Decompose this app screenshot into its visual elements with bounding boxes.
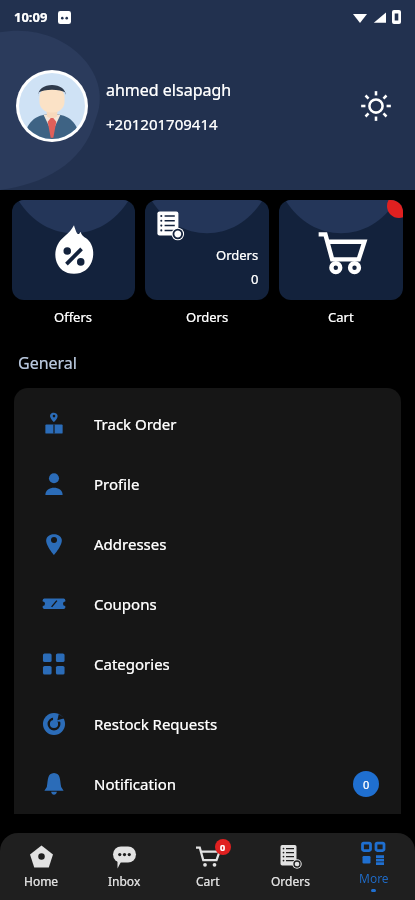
button[interactable]: Categories — [14, 634, 401, 694]
staticText: General — [18, 352, 77, 374]
staticText: ahmed elsapagh — [106, 79, 232, 101]
button[interactable]: More — [332, 835, 415, 898]
staticText: Home — [24, 873, 59, 889]
staticText: More — [359, 870, 389, 886]
staticText: Categories — [94, 654, 170, 674]
staticText: Offers — [54, 308, 93, 326]
staticText: Notification — [94, 774, 177, 794]
button[interactable]: Home — [0, 838, 83, 895]
staticText: Orders — [216, 246, 259, 264]
staticText: Cart — [328, 308, 354, 326]
staticText: 0 — [251, 270, 259, 288]
staticText: Inbox — [108, 873, 141, 889]
button[interactable]: Profile photo — [19, 73, 85, 139]
staticText: Orders — [271, 873, 310, 889]
button[interactable]: 0 — [166, 838, 249, 895]
button[interactable]: Offers — [12, 200, 135, 326]
staticText: Coupons — [94, 594, 157, 614]
button[interactable]: Profile — [14, 454, 401, 514]
staticText: Addresses — [94, 534, 167, 554]
staticText: Track Order — [94, 414, 177, 434]
button[interactable]: Notification — [14, 754, 401, 814]
button[interactable]: Coupons — [14, 574, 401, 634]
staticText: 0 — [220, 841, 226, 853]
button[interactable]: Orders — [145, 200, 269, 326]
button[interactable]: Track Order — [14, 394, 401, 454]
staticText: +201201709414 — [106, 114, 218, 134]
staticText: 10:09 — [14, 8, 48, 26]
button[interactable]: Cart — [279, 200, 403, 326]
button[interactable]: Inbox — [83, 838, 166, 895]
staticText: Orders — [186, 308, 229, 326]
staticText: Profile — [94, 474, 140, 494]
button[interactable]: Addresses — [14, 514, 401, 574]
staticText: Cart — [196, 873, 220, 889]
staticText: 0 — [363, 777, 370, 792]
staticText: Restock Requests — [94, 714, 218, 734]
button[interactable]: Toggle theme — [353, 83, 399, 129]
button[interactable]: Restock Requests — [14, 694, 401, 754]
button[interactable]: Orders — [249, 838, 332, 895]
